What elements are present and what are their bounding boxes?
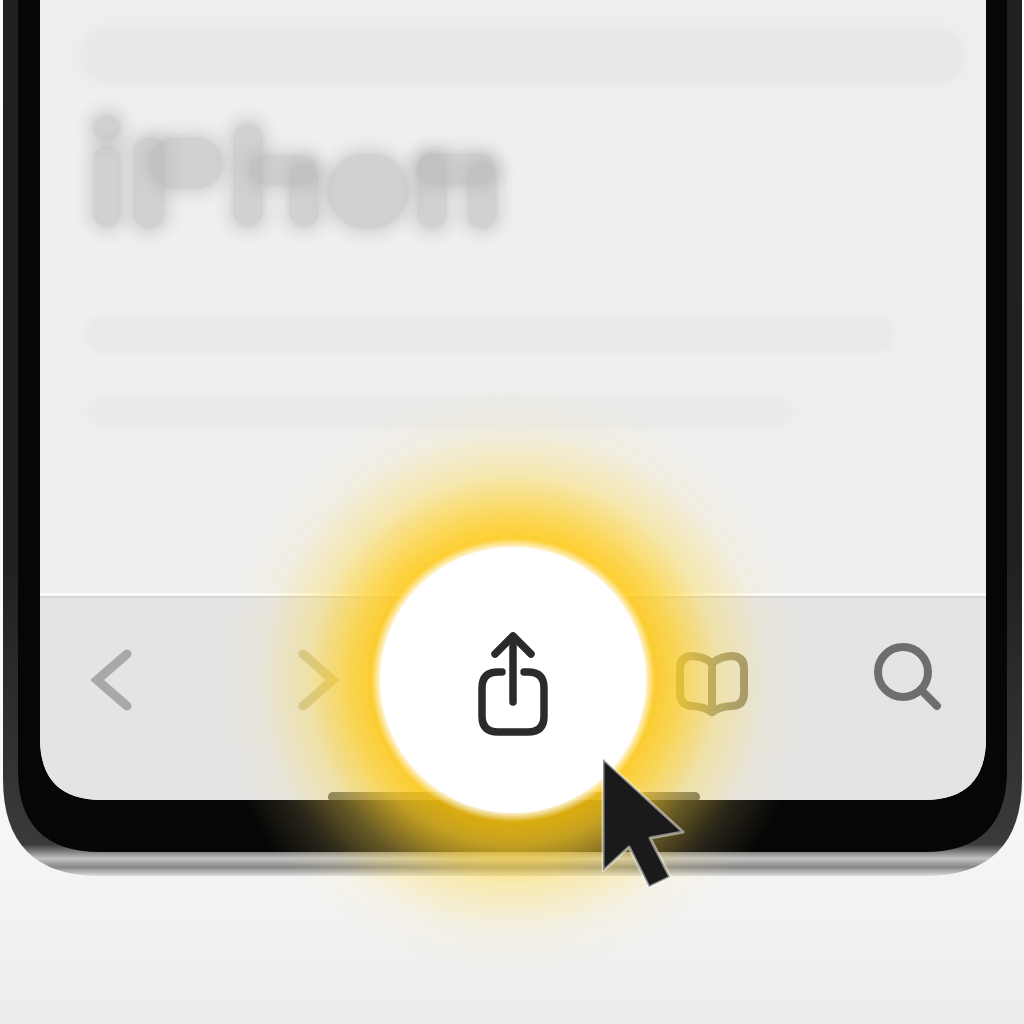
button[interactable]: Search — [844, 620, 974, 742]
button[interactable]: Bookmarks — [648, 620, 778, 742]
button[interactable]: Share — [380, 547, 646, 813]
button[interactable]: Back — [46, 620, 178, 742]
button[interactable]: Forward — [252, 620, 384, 742]
